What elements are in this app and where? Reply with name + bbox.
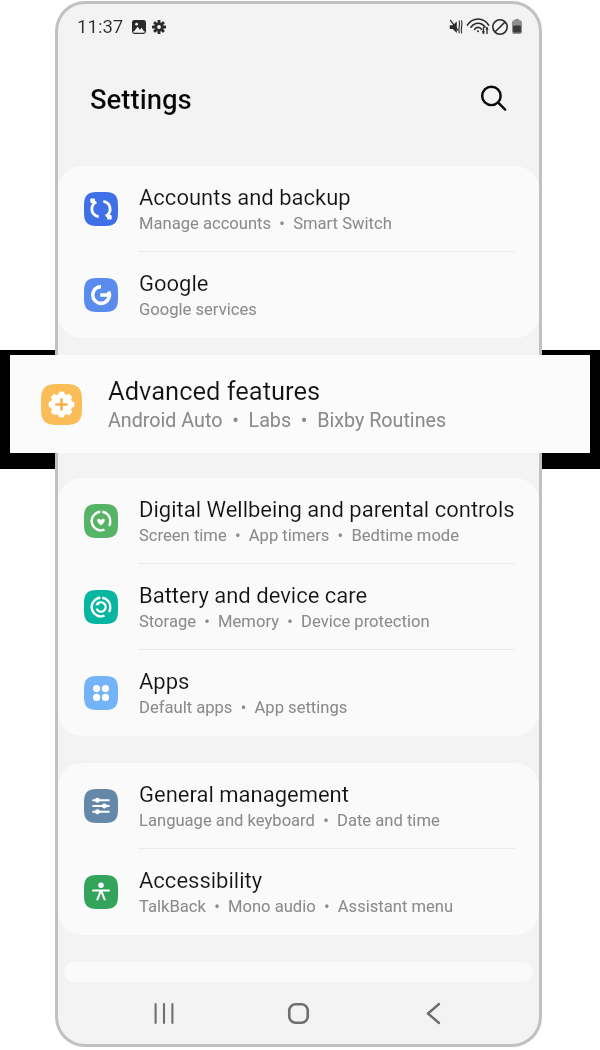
staticText: Screen time • App timers • Bedtime mode — [139, 526, 460, 545]
staticText: Digital Wellbeing and parental controls — [139, 497, 515, 523]
staticText: Advanced features — [139, 384, 323, 410]
button[interactable]: Home — [231, 982, 366, 1044]
button[interactable]: Accessibility — [58, 849, 539, 935]
staticText: Android Auto • Labs • Bixby Routines — [139, 413, 424, 432]
staticText: Settings — [90, 83, 192, 115]
staticText: 11:37 — [77, 16, 124, 38]
staticText: TalkBack • Mono audio • Assistant menu — [139, 897, 454, 916]
button[interactable]: Digital Wellbeing and parental controls — [58, 478, 539, 564]
staticText: Google services — [139, 300, 257, 319]
staticText: Default apps • App settings — [139, 698, 348, 717]
button[interactable]: Recent apps — [96, 982, 231, 1044]
button[interactable]: Advanced features — [58, 365, 539, 451]
staticText: Battery and device care — [139, 583, 368, 609]
button[interactable]: Google — [58, 252, 539, 338]
staticText: Advanced features — [108, 376, 321, 406]
staticText: Manage accounts • Smart Switch — [139, 214, 392, 233]
button[interactable]: Battery and device care — [58, 564, 539, 650]
staticText: Google — [139, 271, 209, 297]
button[interactable]: Search — [473, 78, 515, 120]
staticText: Accessibility — [139, 868, 263, 894]
staticText: Apps — [139, 669, 190, 695]
button[interactable]: Advanced features — [10, 355, 590, 453]
staticText: General management — [139, 782, 349, 808]
staticText: Accounts and backup — [139, 185, 351, 211]
button[interactable]: Apps — [58, 650, 539, 736]
staticText: Android Auto • Labs • Bixby Routines — [108, 409, 447, 432]
staticText: Language and keyboard • Date and time — [139, 811, 440, 830]
button[interactable]: Back — [366, 982, 501, 1044]
button[interactable]: General management — [58, 763, 539, 849]
staticText: Storage • Memory • Device protection — [139, 612, 430, 631]
button[interactable]: Accounts and backup — [58, 166, 539, 252]
